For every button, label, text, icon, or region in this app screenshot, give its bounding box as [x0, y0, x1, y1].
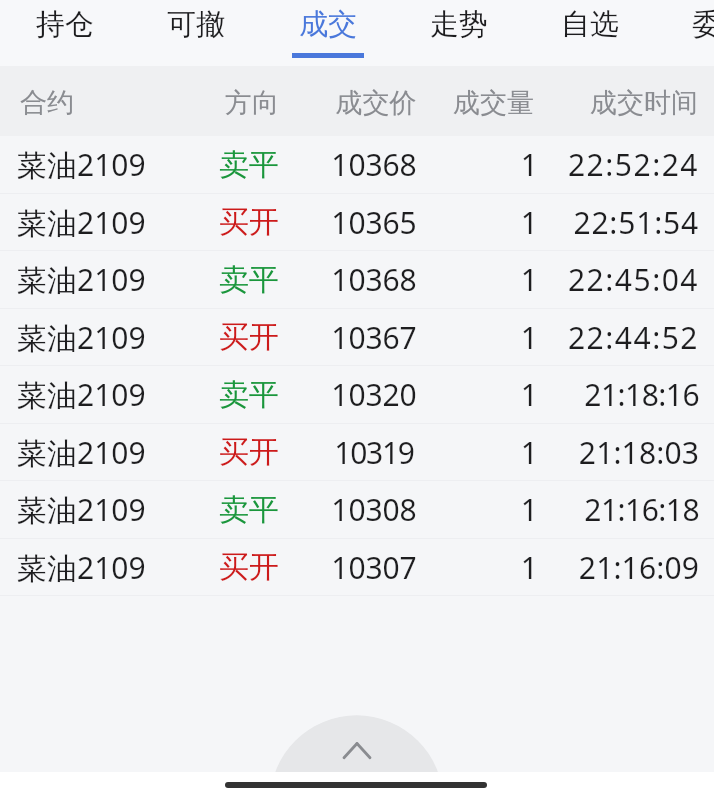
staticText: 10365 [274, 202, 474, 243]
staticText: 卖平 [149, 261, 349, 299]
staticText: 22:51:54 [479, 202, 699, 243]
button[interactable]: 菜油2109 [0, 194, 714, 251]
staticText: 委托 [692, 6, 714, 43]
staticText: 卖平 [149, 491, 349, 529]
staticText: 买开 [149, 433, 349, 471]
button[interactable]: 菜油2109 [0, 481, 714, 539]
staticText: 菜油2109 [17, 489, 146, 530]
staticText: 买开 [149, 548, 349, 586]
staticText: 10307 [274, 547, 474, 588]
staticText: 22:52:24 [479, 144, 699, 185]
button[interactable]: 菜油2109 [0, 309, 714, 366]
staticText: 1 [318, 202, 538, 243]
staticText: 1 [318, 144, 538, 185]
button[interactable]: 委托 [655, 0, 714, 66]
staticText: 买开 [149, 203, 349, 241]
button[interactable]: 菜油2109 [0, 539, 714, 596]
staticText: 21:16:18 [479, 489, 699, 530]
staticText: 1 [318, 259, 538, 300]
staticText: 21:16:09 [479, 547, 699, 588]
staticText: 自选 [561, 6, 619, 43]
staticText: 10319 [274, 432, 474, 473]
staticText: 21:18:16 [479, 374, 699, 415]
button[interactable]: 菜油2109 [0, 424, 714, 481]
staticText: 菜油2109 [17, 547, 146, 588]
staticText: 22:45:04 [479, 259, 699, 300]
staticText: 成交 [299, 6, 357, 43]
staticText: 10367 [274, 317, 474, 358]
staticText: 成交量 [314, 86, 534, 120]
staticText: 菜油2109 [17, 374, 146, 415]
staticText: 10368 [274, 259, 474, 300]
button[interactable]: 走势 [393, 0, 524, 66]
staticText: 成交时间 [478, 86, 698, 120]
staticText: 菜油2109 [17, 259, 146, 300]
button[interactable]: 持仓 [0, 0, 130, 66]
staticText: 走势 [430, 6, 488, 43]
staticText: 21:18:03 [479, 432, 699, 473]
staticText: 买开 [149, 318, 349, 356]
staticText: 菜油2109 [17, 144, 146, 185]
staticText: 1 [318, 547, 538, 588]
button[interactable]: 自选 [524, 0, 655, 66]
button[interactable]: 菜油2109 [0, 251, 714, 309]
button[interactable]: 菜油2109 [0, 136, 714, 194]
staticText: 方向 [152, 86, 352, 120]
staticText: 1 [318, 317, 538, 358]
staticText: 1 [318, 432, 538, 473]
staticText: 22:44:52 [479, 317, 699, 358]
staticText: 卖平 [149, 376, 349, 414]
staticText: 10368 [274, 144, 474, 185]
button[interactable]: 菜油2109 [0, 366, 714, 424]
staticText: 菜油2109 [17, 432, 146, 473]
staticText: 1 [318, 374, 538, 415]
staticText: 菜油2109 [17, 317, 146, 358]
staticText: 菜油2109 [17, 202, 146, 243]
staticText: 持仓 [36, 6, 94, 43]
button[interactable]: Collapse panel [270, 715, 444, 772]
staticText: 成交价 [276, 86, 476, 120]
staticText: 10320 [274, 374, 474, 415]
button[interactable]: 可撤 [130, 0, 261, 66]
button[interactable]: 成交 [262, 0, 393, 66]
staticText: 卖平 [149, 146, 349, 184]
staticText: 可撤 [167, 6, 225, 43]
staticText: 合约 [20, 86, 74, 120]
staticText: 10308 [274, 489, 474, 530]
staticText: 1 [318, 489, 538, 530]
